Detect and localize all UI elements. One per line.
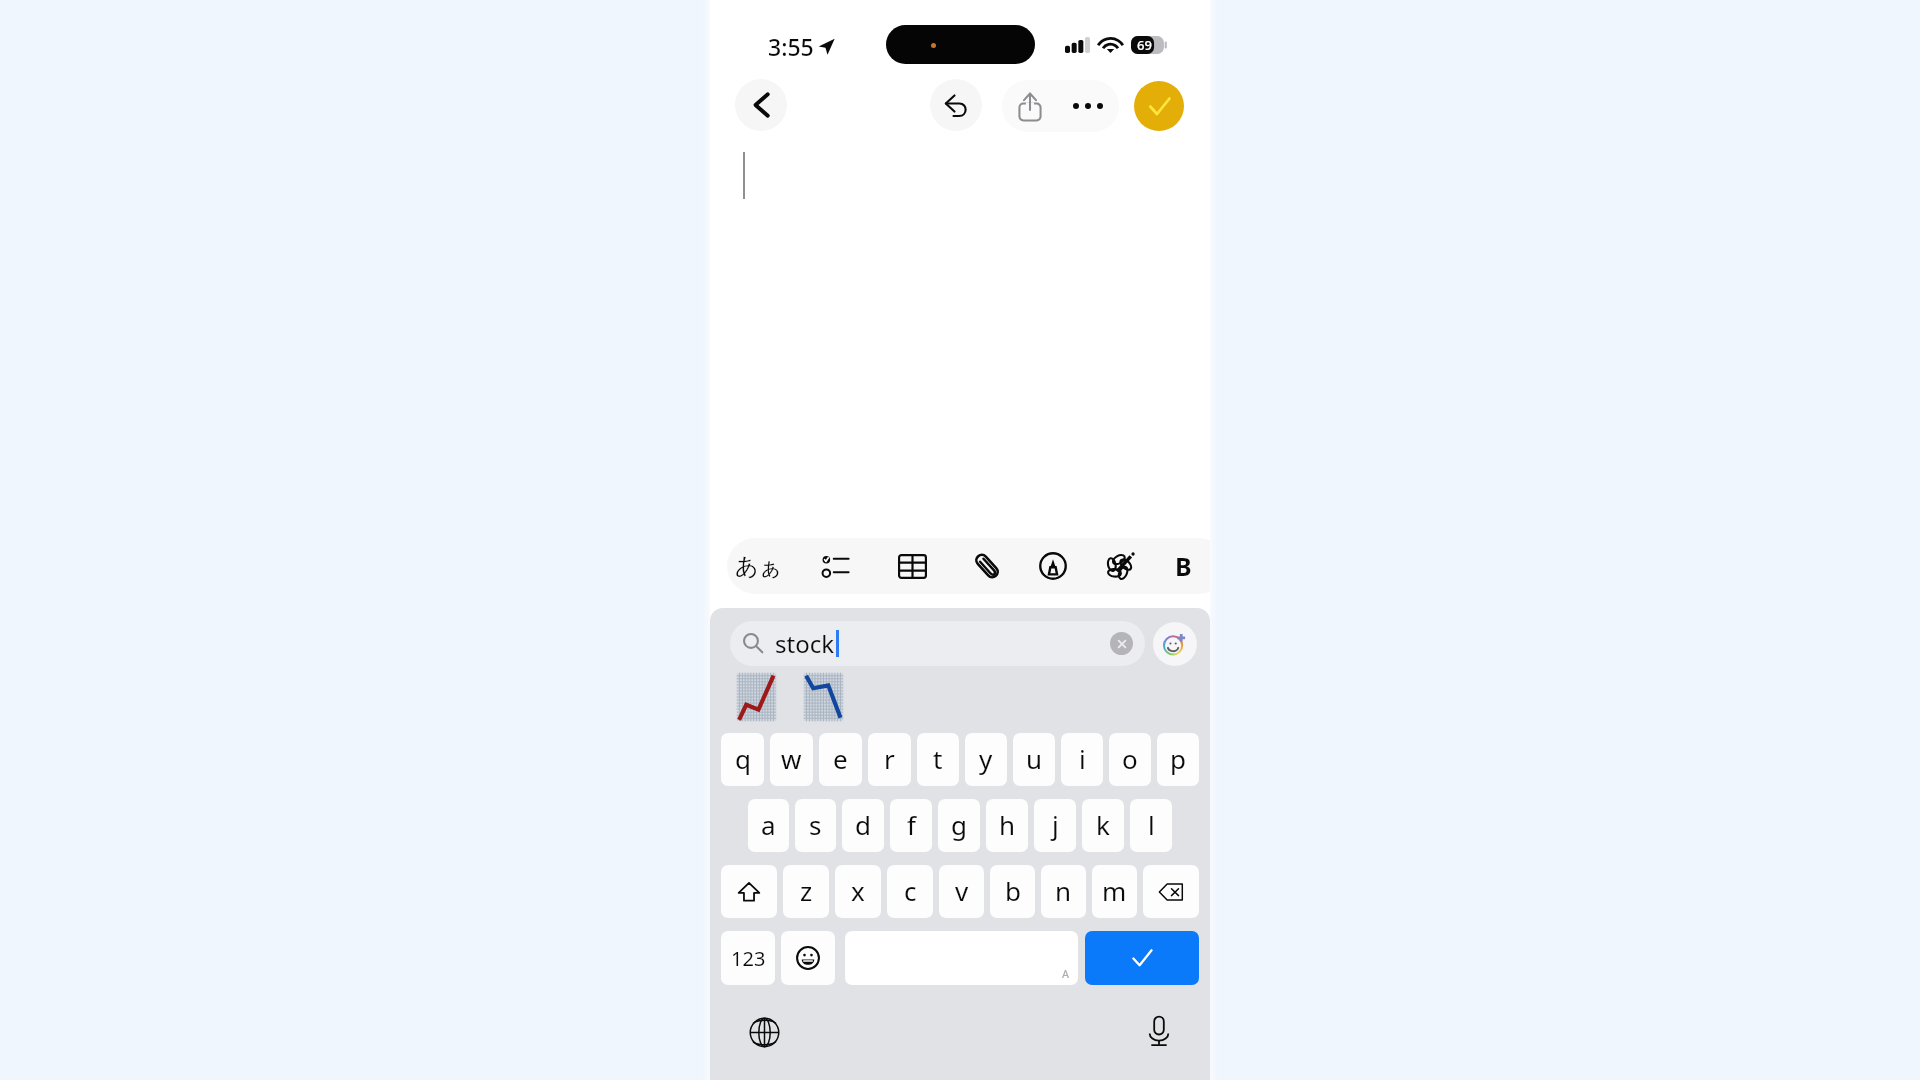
button[interactable]: Create sticker bbox=[1153, 622, 1197, 666]
staticText: B bbox=[1175, 549, 1192, 583]
button[interactable]: z bbox=[783, 865, 829, 918]
button[interactable]: Text style bbox=[1157, 538, 1209, 594]
button[interactable]: o bbox=[1109, 733, 1151, 786]
button[interactable]: a bbox=[748, 799, 789, 852]
button[interactable]: Clear search bbox=[1110, 632, 1133, 655]
button[interactable]: Space bbox=[845, 931, 1078, 985]
staticText: u bbox=[1026, 741, 1043, 776]
button[interactable]: c bbox=[887, 865, 933, 918]
button[interactable]: stock bbox=[730, 621, 1145, 666]
button[interactable]: v bbox=[939, 865, 984, 918]
staticText: 69 bbox=[1137, 36, 1152, 54]
staticText: 123 bbox=[731, 945, 766, 972]
button[interactable]: l bbox=[1130, 799, 1172, 852]
button[interactable]: Attach file bbox=[961, 538, 1013, 594]
staticText: o bbox=[1122, 741, 1138, 776]
button[interactable]: i bbox=[1061, 733, 1103, 786]
button[interactable]: t bbox=[917, 733, 959, 786]
button[interactable]: Change language bbox=[744, 1012, 784, 1052]
button[interactable]: q bbox=[721, 733, 764, 786]
staticText: n bbox=[1055, 873, 1072, 908]
button[interactable]: More options bbox=[1060, 80, 1116, 132]
staticText: g bbox=[951, 807, 967, 842]
staticText: a bbox=[761, 807, 776, 842]
staticText: l bbox=[1148, 807, 1155, 842]
button[interactable]: p bbox=[1157, 733, 1199, 786]
button[interactable]: Undo bbox=[930, 79, 982, 131]
button[interactable]: Dictate bbox=[1139, 1011, 1179, 1051]
button[interactable]: Confirm bbox=[1085, 931, 1199, 985]
button[interactable]: b bbox=[990, 865, 1035, 918]
button[interactable]: Markup bbox=[1094, 538, 1146, 594]
button[interactable]: m bbox=[1092, 865, 1137, 918]
staticText: v bbox=[955, 873, 969, 908]
staticText: y bbox=[979, 741, 993, 776]
staticText: e bbox=[833, 741, 848, 776]
button[interactable]: w bbox=[770, 733, 813, 786]
staticText: s bbox=[809, 807, 822, 842]
button[interactable]: Checklist bbox=[810, 538, 862, 594]
button[interactable]: Table bbox=[886, 538, 938, 594]
button[interactable]: Shift bbox=[721, 865, 777, 918]
button[interactable]: Back bbox=[735, 79, 787, 131]
button[interactable]: Chart increasing bbox=[735, 672, 778, 722]
button[interactable]: x bbox=[835, 865, 881, 918]
staticText: b bbox=[1005, 873, 1021, 908]
button[interactable]: Done bbox=[1134, 81, 1184, 131]
button[interactable]: d bbox=[842, 799, 884, 852]
button[interactable]: e bbox=[819, 733, 862, 786]
button[interactable]: u bbox=[1013, 733, 1055, 786]
button[interactable]: Chart decreasing bbox=[802, 672, 845, 722]
button[interactable]: r bbox=[868, 733, 911, 786]
button[interactable]: Draw bbox=[1027, 538, 1079, 594]
staticText: z bbox=[800, 873, 813, 908]
button[interactable]: s bbox=[795, 799, 836, 852]
button[interactable]: n bbox=[1041, 865, 1086, 918]
button[interactable]: j bbox=[1034, 799, 1076, 852]
staticText: r bbox=[884, 741, 895, 776]
button[interactable]: Font size bbox=[733, 538, 785, 594]
staticText: f bbox=[907, 807, 916, 842]
button[interactable]: Backspace bbox=[1143, 865, 1199, 918]
staticText: stock bbox=[775, 627, 835, 660]
button[interactable]: Share bbox=[1005, 80, 1055, 132]
button[interactable]: g bbox=[938, 799, 980, 852]
staticText: j bbox=[1052, 807, 1059, 842]
staticText: h bbox=[999, 807, 1016, 842]
staticText: w bbox=[781, 741, 802, 776]
button[interactable]: h bbox=[986, 799, 1028, 852]
staticText: あぁ bbox=[735, 552, 783, 581]
button[interactable]: y bbox=[965, 733, 1007, 786]
staticText: A bbox=[1062, 966, 1070, 981]
staticText: t bbox=[933, 741, 943, 776]
button[interactable]: Emoji keyboard bbox=[781, 931, 835, 985]
staticText: k bbox=[1096, 807, 1110, 842]
staticText: m bbox=[1102, 873, 1127, 908]
staticText: x bbox=[851, 873, 865, 908]
staticText: i bbox=[1079, 741, 1086, 776]
staticText: 3:55 bbox=[768, 31, 814, 62]
staticText: q bbox=[735, 741, 751, 776]
button[interactable]: 123 bbox=[721, 931, 775, 985]
staticText: p bbox=[1170, 741, 1186, 776]
button[interactable]: k bbox=[1082, 799, 1124, 852]
staticText: d bbox=[855, 807, 871, 842]
staticText: c bbox=[904, 873, 917, 908]
button[interactable]: f bbox=[890, 799, 932, 852]
